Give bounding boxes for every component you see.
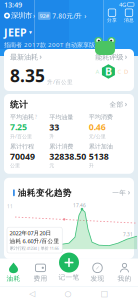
staticText: 元 <box>49 162 54 169</box>
staticText: B <box>105 64 112 79</box>
staticText: D <box>124 67 128 75</box>
staticText: 升/百公里 <box>47 78 73 86</box>
staticText: 0.46 <box>89 121 106 133</box>
staticText: ◁ <box>29 289 35 298</box>
staticText: ▾ <box>29 29 32 36</box>
button[interactable]: 深圳市 <box>4 9 35 20</box>
staticText: 累计消费 <box>49 143 73 150</box>
button[interactable]: 记一笔 <box>58 253 79 281</box>
staticText: 7.31 <box>123 231 133 238</box>
staticText: 70049 <box>10 150 35 162</box>
staticText: 7.25 <box>10 121 27 133</box>
staticText: 8.35 <box>10 64 45 87</box>
staticText: 4G <box>119 0 126 8</box>
staticText: 升 <box>49 133 54 139</box>
staticText: 费用 <box>33 274 47 283</box>
staticText: 平均消费 <box>89 113 113 121</box>
button[interactable]: 能耗评级 <box>95 53 128 79</box>
staticText: JEEP <box>4 25 27 39</box>
staticText: 发现 <box>90 274 104 283</box>
button[interactable]: 全部 <box>109 100 128 109</box>
staticText: 公里 <box>10 162 20 169</box>
staticText: 我的 <box>117 274 131 283</box>
staticText: 17.46 <box>73 202 86 209</box>
button[interactable]: 最新油耗 <box>10 53 73 87</box>
staticText: A <box>95 67 99 75</box>
staticText: 能耗评级 <box>95 53 123 62</box>
button[interactable]: 发现 <box>84 259 111 287</box>
staticText: 最新油耗 <box>10 53 38 62</box>
staticText: 升/百公里 <box>10 133 32 140</box>
staticText: 分享 <box>107 17 117 23</box>
staticText: 0 <box>10 243 13 249</box>
staticText: 92# <box>40 12 49 19</box>
staticText: 33 <box>49 121 59 133</box>
staticText: 深圳市 <box>11 11 32 20</box>
staticText: 平均油量 <box>49 113 73 121</box>
staticText: 一年 <box>112 189 126 197</box>
button[interactable]: 油耗 <box>0 259 27 287</box>
staticText: C <box>117 67 121 75</box>
staticText: 元/公里 <box>89 133 106 140</box>
staticText: 消息 <box>124 17 134 23</box>
button[interactable]: 费用 <box>27 259 54 287</box>
staticText: 累计行程 <box>10 143 34 150</box>
button[interactable]: 一年 <box>112 189 131 197</box>
staticText: 累计加油 <box>89 143 113 150</box>
button[interactable]: 我的 <box>111 259 138 287</box>
staticText: 油耗变化趋势 <box>18 187 72 198</box>
staticText: 11 <box>7 203 13 210</box>
staticText: 5138 <box>89 150 109 162</box>
staticText: 2022年07月20日 <box>10 229 52 237</box>
staticText: 平均油耗 <box>10 113 34 121</box>
staticText: 记一笔 <box>58 273 79 281</box>
staticText: ? <box>35 114 37 120</box>
staticText: 13:49 <box>4 0 22 10</box>
button[interactable]: Share <box>107 9 117 23</box>
staticText: 指南者 2017款 200T 自动家享版 <box>4 40 95 49</box>
staticText: 32838.50 <box>49 150 86 162</box>
staticText: 升 <box>89 162 94 169</box>
staticText: ○ <box>64 289 71 298</box>
button[interactable]: Messages <box>117 9 134 23</box>
staticText: 累计行程 41234 | 单价 11.66 <box>10 245 59 251</box>
staticText: 统计 <box>10 99 28 110</box>
staticText: 油耗 6.60升/百公里 <box>10 237 60 245</box>
staticText: 全部 <box>109 100 123 109</box>
button[interactable]: JEEP <box>0 23 138 49</box>
staticText: › <box>33 11 35 20</box>
staticText: 油耗 <box>6 274 20 283</box>
staticText: □ <box>101 289 109 298</box>
staticText: 7.80元/升 › <box>52 11 86 20</box>
